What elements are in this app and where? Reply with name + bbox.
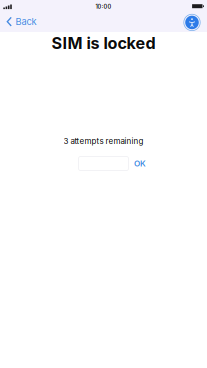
staticText: SIM is locked bbox=[51, 33, 155, 53]
staticText: 3 attempts remaining bbox=[63, 136, 143, 146]
staticText: OK bbox=[134, 159, 146, 168]
button[interactable]: Accessibility bbox=[183, 12, 207, 31]
staticText: Back bbox=[16, 16, 37, 27]
button[interactable]: OK bbox=[132, 156, 148, 171]
staticText: 10:00 bbox=[95, 3, 111, 10]
button[interactable]: Back bbox=[0, 11, 37, 32]
